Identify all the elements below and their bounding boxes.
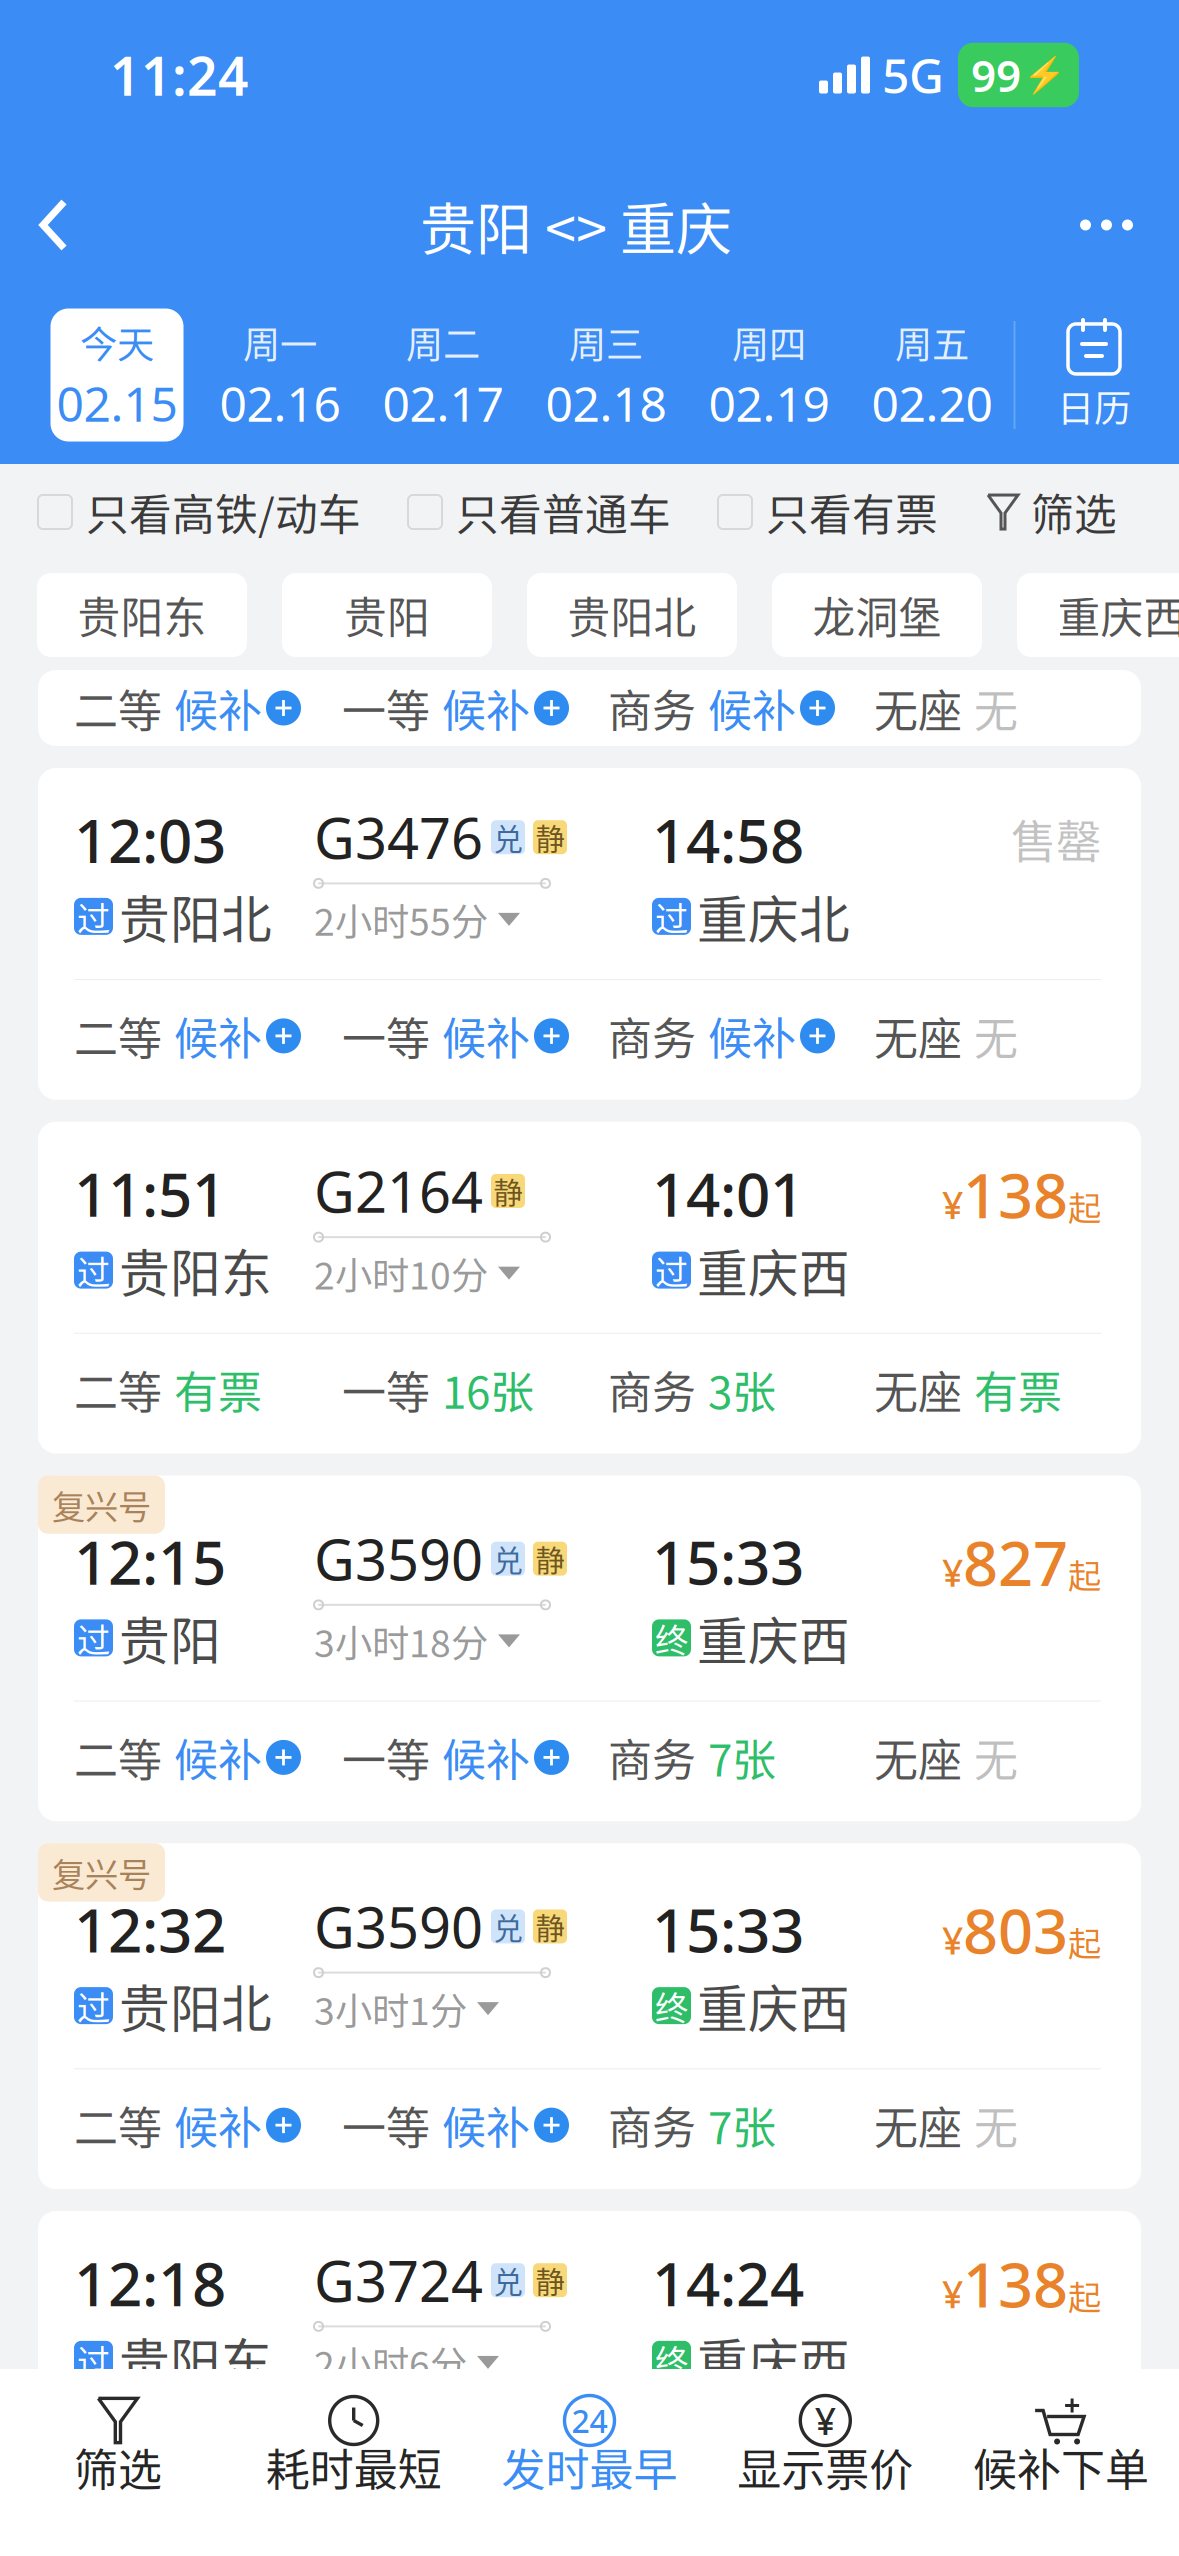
staticText: 贵阳东 xyxy=(77,584,206,646)
staticText: 2小时6分 xyxy=(314,2335,467,2389)
staticText: 只看高铁/动车 xyxy=(86,481,361,543)
staticText: 15:33 xyxy=(652,1889,804,1969)
button[interactable]: More xyxy=(1060,175,1179,275)
staticText: 周五 xyxy=(895,315,969,369)
staticText: 贵阳北 xyxy=(119,880,272,953)
staticText: 无 xyxy=(974,1004,1018,1068)
button[interactable]: 筛选 xyxy=(0,2369,236,2489)
staticText: 重庆北 xyxy=(697,880,850,953)
staticText: 重庆西 xyxy=(697,1601,850,1675)
staticText: 803 xyxy=(963,1889,1068,1971)
button[interactable]: 只看高铁/动车 xyxy=(38,481,361,543)
staticText: 终 xyxy=(655,2335,688,2383)
staticText: 02.20 xyxy=(871,371,992,435)
staticText: 16张 xyxy=(442,1358,534,1421)
staticText: ⚡ xyxy=(1023,55,1066,95)
button[interactable]: 龙洞堡 xyxy=(772,573,982,657)
staticText: 7张 xyxy=(708,1725,776,1789)
staticText: 12:32 xyxy=(74,1889,226,1969)
button[interactable]: 周四 xyxy=(687,308,850,441)
staticText: 贵阳北 xyxy=(567,584,696,646)
staticText: 静 xyxy=(535,1905,564,1948)
staticText: 兑 xyxy=(493,2259,522,2301)
staticText: 138 xyxy=(963,1154,1068,1235)
button[interactable]: 周二 xyxy=(361,308,524,441)
staticText: 商务 xyxy=(608,1725,696,1789)
button[interactable]: 日历 xyxy=(1015,317,1172,433)
staticText: G3724 xyxy=(314,2243,483,2317)
staticText: 候补下单 xyxy=(973,2435,1149,2499)
button[interactable]: 周一 xyxy=(198,308,361,441)
staticText: 只看有票 xyxy=(766,481,938,543)
button[interactable]: 候补下单 xyxy=(943,2369,1179,2489)
staticText: 无座 xyxy=(874,1004,962,1068)
staticText: 候补 xyxy=(174,2093,262,2157)
button[interactable]: 12:32 xyxy=(38,1843,1141,2189)
staticText: 兑 xyxy=(493,1537,522,1580)
staticText: ¥ xyxy=(815,2396,836,2445)
staticText: 商务 xyxy=(608,1358,696,1421)
staticText: 候补 xyxy=(174,1725,262,1789)
staticText: 贵阳 xyxy=(119,1601,221,1675)
staticText: 无座 xyxy=(874,2447,962,2511)
staticText: 2小时10分 xyxy=(314,1246,488,1300)
staticText: 一等 xyxy=(342,2447,430,2511)
staticText: 候补 xyxy=(708,1004,796,1068)
staticText: 99 xyxy=(971,46,1021,104)
staticText: 12:15 xyxy=(74,1521,226,1601)
button[interactable]: 周五 xyxy=(850,308,1013,441)
staticText: 一等 xyxy=(342,1725,430,1789)
staticText: 售罄 xyxy=(1011,806,1101,872)
button[interactable]: 贵阳 xyxy=(282,573,492,657)
staticText: G3590 xyxy=(314,1521,483,1596)
staticText: 5G xyxy=(882,43,944,107)
staticText: 无座 xyxy=(874,1725,962,1789)
button[interactable]: 12:18 xyxy=(38,2211,1141,2543)
staticText: ¥ xyxy=(942,1180,963,1229)
staticText: 发时最早 xyxy=(501,2435,677,2499)
button[interactable]: 只看有票 xyxy=(718,481,938,543)
staticText: 商务 xyxy=(608,2093,696,2157)
button[interactable]: 贵阳北 xyxy=(527,573,737,657)
button[interactable]: ¥ xyxy=(707,2369,943,2489)
staticText: 14:01 xyxy=(652,1154,804,1233)
staticText: 无座 xyxy=(874,2093,962,2157)
staticText: 周四 xyxy=(732,315,806,369)
button[interactable]: 12:15 xyxy=(38,1475,1141,1821)
staticText: 一等 xyxy=(342,1004,430,1068)
button[interactable]: 只看普通车 xyxy=(408,481,671,543)
button[interactable]: 今天 xyxy=(50,308,183,441)
staticText: 终 xyxy=(655,1614,688,1662)
staticText: 24 xyxy=(571,2399,607,2442)
staticText: G2164 xyxy=(314,1154,483,1228)
staticText: 起 xyxy=(1068,1550,1101,1598)
button[interactable]: 贵阳东 xyxy=(37,573,247,657)
staticText: 商务 xyxy=(608,676,696,740)
staticText: 二等 xyxy=(74,1725,162,1789)
button[interactable]: 重庆西 xyxy=(1017,573,1179,657)
staticText: 02.19 xyxy=(708,371,829,435)
staticText: 只看普通车 xyxy=(456,481,671,543)
staticText: 3张 xyxy=(708,1358,776,1421)
staticText: 静 xyxy=(535,1537,564,1580)
staticText: 静 xyxy=(535,2259,564,2301)
button[interactable]: Back xyxy=(0,175,92,275)
button[interactable]: 筛选 xyxy=(985,481,1117,543)
button[interactable]: 24 xyxy=(472,2369,707,2489)
staticText: 候补 xyxy=(174,676,262,740)
staticText: 日历 xyxy=(1057,379,1131,433)
staticText: 候补 xyxy=(174,1004,262,1068)
button[interactable]: 周三 xyxy=(524,308,687,441)
button[interactable]: 12:03 xyxy=(38,768,1141,1100)
staticText: 过 xyxy=(655,892,688,940)
staticText: 筛选 xyxy=(1031,481,1117,543)
staticText: 14:24 xyxy=(652,2243,804,2323)
staticText: 02.15 xyxy=(56,371,177,435)
button[interactable]: 耗时最短 xyxy=(236,2369,472,2489)
staticText: 二等 xyxy=(74,2447,162,2511)
staticText: 贵阳北 xyxy=(119,1969,272,2042)
button[interactable]: 11:51 xyxy=(38,1122,1141,1454)
staticText: 复兴号 xyxy=(52,1480,151,1529)
staticText: 02.17 xyxy=(382,371,503,435)
